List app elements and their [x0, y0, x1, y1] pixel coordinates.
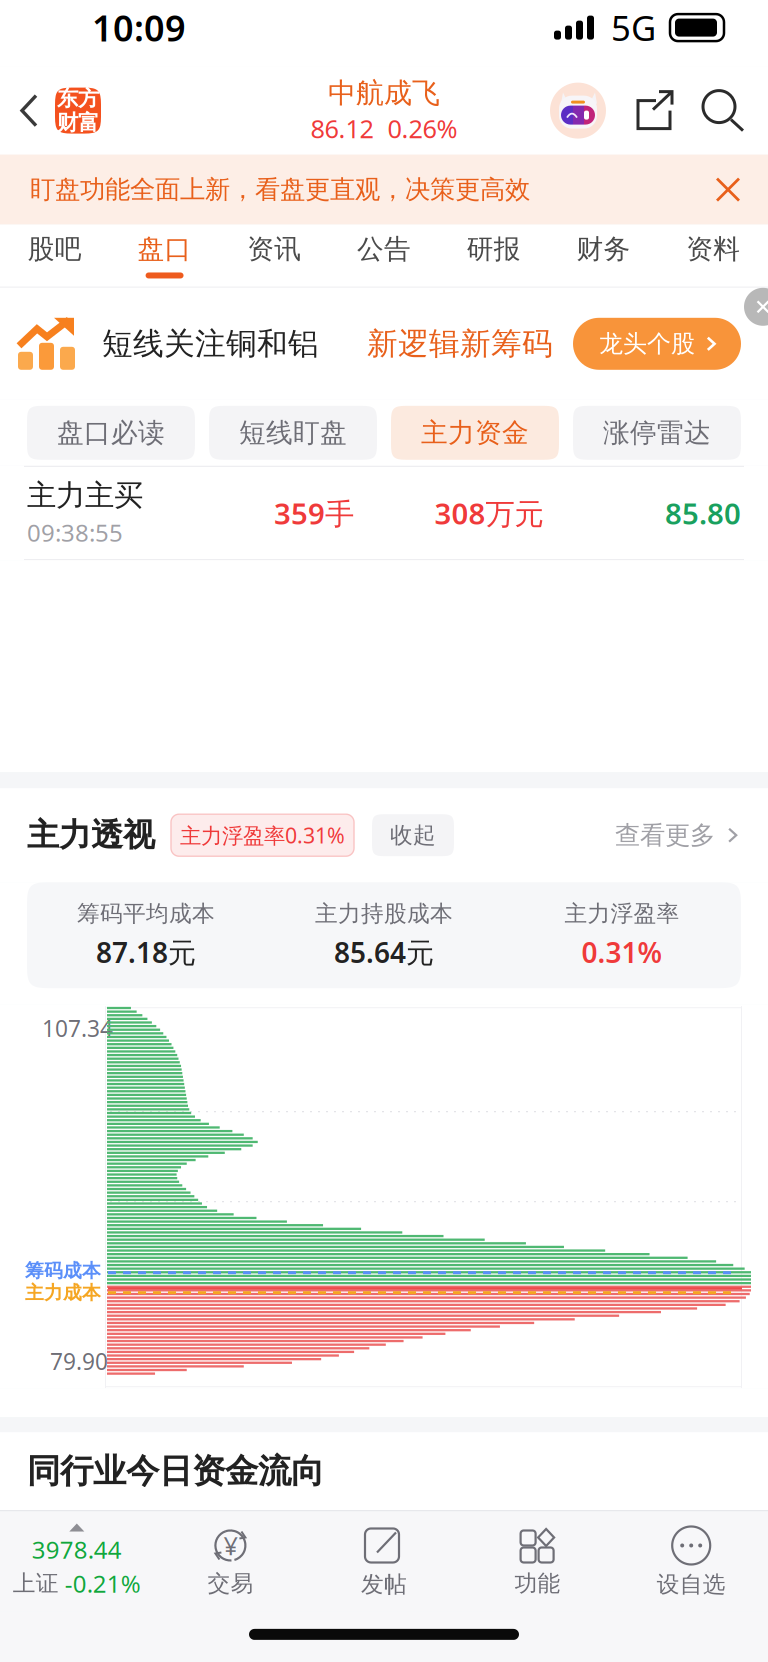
staticText: 设自选: [657, 1570, 726, 1598]
button[interactable]: 资料: [658, 225, 768, 287]
button[interactable]: ¥: [154, 1511, 307, 1611]
button[interactable]: Share: [606, 89, 676, 133]
button[interactable]: 查看更多: [615, 788, 768, 882]
staticText: 主力透视: [27, 815, 155, 855]
button[interactable]: 盘口必读: [27, 406, 195, 460]
staticText: 308万元: [434, 493, 543, 532]
staticText: 79.90: [50, 1346, 108, 1376]
staticText: 主力主买: [27, 477, 143, 513]
button[interactable]: East Money home: [55, 88, 101, 134]
staticText: 短线关注铜和铝: [102, 325, 319, 363]
staticText: 财富: [57, 110, 99, 136]
staticText: 龙头个股: [599, 329, 695, 359]
staticText: 359手: [274, 493, 354, 532]
button[interactable]: 涨停雷达: [573, 406, 741, 460]
button[interactable]: Back: [0, 67, 55, 155]
button[interactable]: 公告: [329, 225, 439, 287]
staticText: 查看更多: [615, 820, 715, 851]
staticText: 主力持股成本: [315, 900, 453, 927]
staticText: 研报: [467, 233, 521, 265]
staticText: 5G: [611, 5, 656, 51]
button[interactable]: AI assistant: [550, 83, 606, 139]
button[interactable]: 功能: [461, 1511, 614, 1611]
staticText: 主力浮盈率: [564, 900, 679, 927]
staticText: 筹码平均成本: [77, 900, 215, 927]
staticText: 东方: [57, 85, 99, 112]
staticText: 87.18元: [96, 933, 196, 971]
staticText: 涨停雷达: [603, 416, 711, 449]
button[interactable]: 研报: [439, 225, 549, 287]
staticText: 主力浮盈率0.31%: [180, 821, 345, 849]
staticText: 交易: [207, 1569, 253, 1597]
button[interactable]: 发帖: [307, 1511, 461, 1611]
staticText: 85.80: [665, 493, 741, 532]
staticText: 收起: [390, 821, 436, 849]
staticText: 3978.44: [32, 1533, 122, 1565]
staticText: 107.34: [42, 1013, 113, 1043]
staticText: 盘口必读: [57, 416, 165, 449]
staticText: 主力资金: [421, 416, 529, 449]
staticText: ¥: [223, 1529, 237, 1562]
staticText: 资讯: [247, 233, 301, 265]
staticText: 筹码成本: [25, 1259, 101, 1282]
button[interactable]: 盘口: [110, 225, 219, 287]
staticText: 85.64元: [334, 933, 434, 971]
staticText: 上证: [13, 1569, 59, 1597]
staticText: 中航成飞: [328, 76, 440, 110]
button[interactable]: 设自选: [614, 1511, 768, 1611]
staticText: 功能: [515, 1569, 561, 1597]
staticText: 财务: [576, 233, 630, 265]
button[interactable]: Dismiss promotion: [744, 288, 768, 326]
staticText: 发帖: [361, 1570, 407, 1598]
staticText: 短线盯盘: [239, 416, 347, 449]
button[interactable]: 资讯: [219, 225, 329, 287]
button[interactable]: Close banner: [692, 155, 768, 225]
staticText: 资料: [686, 233, 740, 265]
staticText: 盘口: [138, 233, 192, 265]
staticText: 盯盘功能全面上新，看盘更直观，决策更高效: [30, 174, 530, 205]
button[interactable]: 龙头个股: [573, 318, 741, 370]
staticText: 0.31%: [581, 933, 662, 971]
staticText: 股吧: [28, 233, 82, 265]
staticText: 主力成本: [25, 1281, 101, 1304]
staticText: 86.12 0.26%: [310, 111, 457, 145]
button[interactable]: 财务: [549, 225, 658, 287]
staticText: 同行业今日资金流向: [27, 1451, 324, 1492]
button[interactable]: Search: [676, 89, 768, 133]
button[interactable]: 短线盯盘: [209, 406, 377, 460]
staticText: 10:09: [92, 4, 186, 51]
staticText: -0.21%: [65, 1567, 141, 1599]
staticText: 公告: [357, 233, 411, 265]
button[interactable]: Shanghai Composite index: [0, 1511, 154, 1611]
button[interactable]: 股吧: [0, 225, 110, 287]
staticText: 新逻辑新筹码: [367, 325, 553, 363]
button[interactable]: 收起: [372, 814, 454, 856]
staticText: 09:38:55: [27, 517, 123, 548]
button[interactable]: 主力资金: [391, 406, 559, 460]
